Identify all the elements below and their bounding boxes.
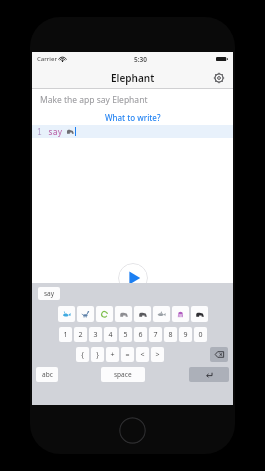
button[interactable]: + (106, 347, 119, 362)
staticText: + (110, 350, 115, 360)
button[interactable]: space (101, 367, 145, 382)
staticText: 5 (123, 330, 128, 340)
staticText: } (96, 350, 99, 360)
staticText: Make the app say Elephant (40, 94, 148, 106)
button[interactable]: Backspace (210, 347, 228, 362)
button[interactable]: Animal emoji (172, 306, 189, 322)
button[interactable]: What to write? (32, 110, 233, 125)
button[interactable]: 2 (74, 327, 87, 342)
staticText: 1 (63, 330, 68, 340)
button[interactable]: Return (189, 367, 229, 382)
button[interactable]: 5 (119, 327, 132, 342)
button[interactable]: 6 (134, 327, 147, 342)
button[interactable]: say (38, 287, 60, 300)
button[interactable]: Animal emoji (153, 306, 170, 322)
staticText: space (114, 370, 132, 379)
staticText: What to write? (105, 112, 161, 123)
staticText: 1 (37, 126, 42, 137)
staticText: = (125, 350, 130, 360)
staticText: Carrier (37, 55, 57, 63)
staticText: < (140, 350, 145, 360)
button[interactable]: Animal emoji (58, 306, 75, 322)
button[interactable]: { (76, 347, 89, 362)
button[interactable]: 8 (164, 327, 177, 342)
staticText: Elephant (111, 71, 155, 85)
button[interactable]: 1 (59, 327, 72, 342)
button[interactable]: Run (118, 263, 148, 293)
button[interactable]: Animal emoji (77, 306, 94, 322)
staticText: 3 (93, 330, 98, 340)
button[interactable]: 3 (89, 327, 102, 342)
button[interactable]: 9 (179, 327, 192, 342)
button[interactable]: Home (119, 417, 146, 444)
staticText: > (155, 350, 160, 360)
staticText: 9 (183, 330, 188, 340)
button[interactable]: < (136, 347, 149, 362)
button[interactable]: Settings (211, 70, 227, 86)
button[interactable]: = (121, 347, 134, 362)
staticText: abc (42, 370, 53, 379)
button[interactable]: } (91, 347, 104, 362)
button[interactable]: 0 (194, 327, 207, 342)
button[interactable]: 1 (32, 125, 233, 138)
button[interactable]: Animal emoji (115, 306, 132, 322)
staticText: say (48, 126, 63, 137)
staticText: 7 (153, 330, 158, 340)
staticText: 2 (78, 330, 83, 340)
staticText: say (44, 289, 55, 298)
button[interactable]: abc (36, 367, 58, 382)
button[interactable]: Animal emoji (96, 306, 113, 322)
button[interactable]: 7 (149, 327, 162, 342)
button[interactable]: 4 (104, 327, 117, 342)
staticText: 6 (138, 330, 143, 340)
staticText: 5:30 (134, 55, 147, 64)
staticText: { (81, 350, 84, 360)
button[interactable]: Animal emoji (191, 306, 208, 322)
staticText: 8 (168, 330, 173, 340)
staticText: 0 (198, 330, 203, 340)
staticText: 4 (108, 330, 113, 340)
button[interactable]: Animal emoji (134, 306, 151, 322)
button[interactable]: > (151, 347, 164, 362)
